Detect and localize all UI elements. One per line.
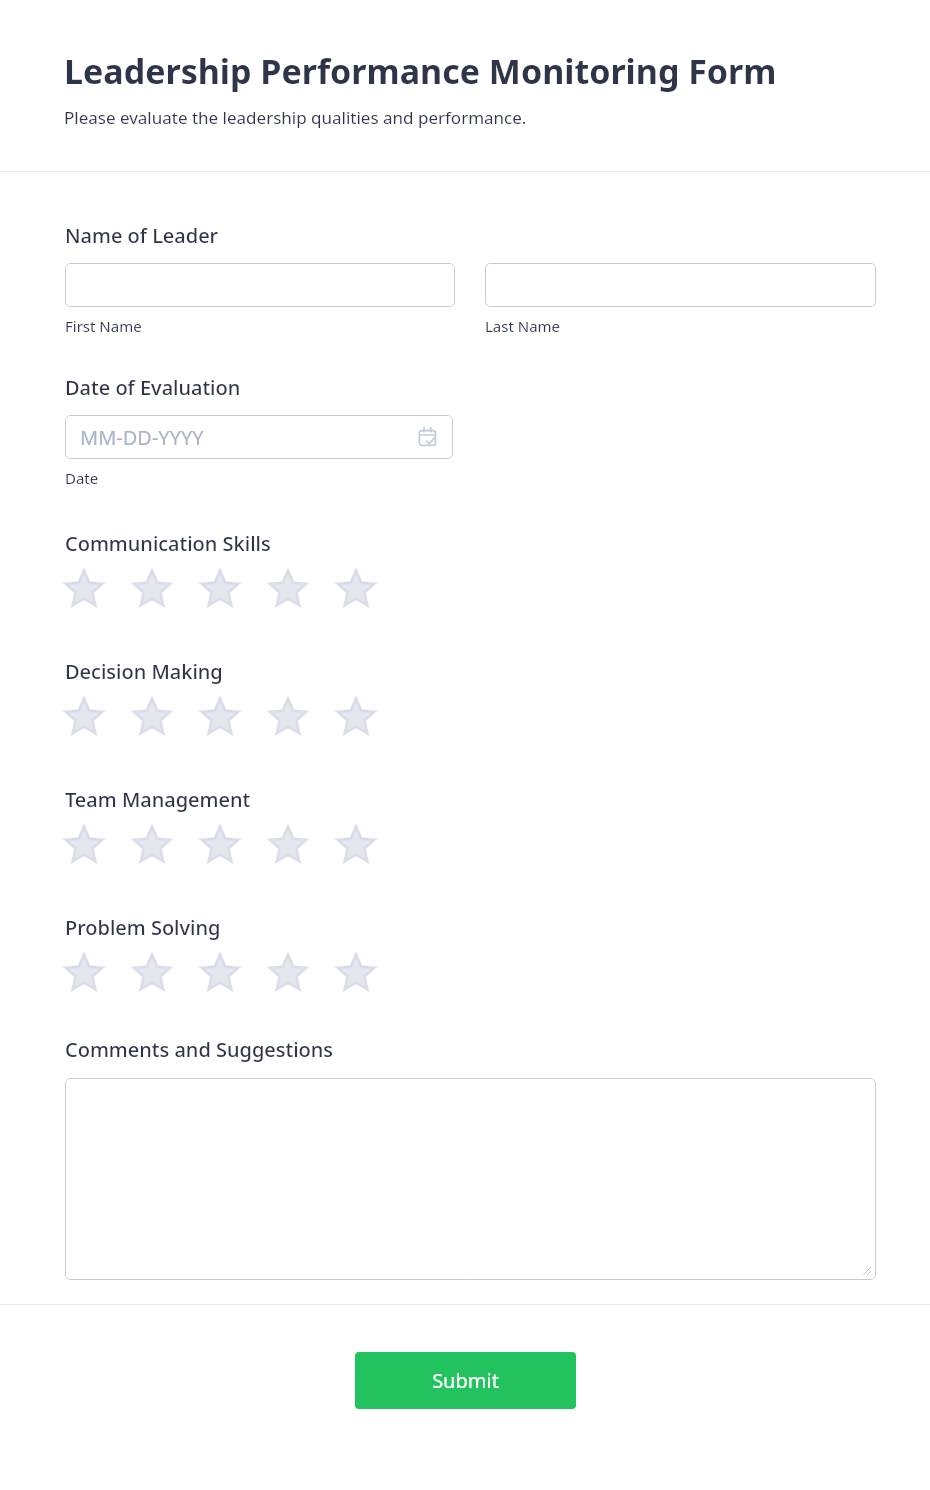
button[interactable] <box>65 263 455 307</box>
staticText: Name of Leader <box>65 222 219 249</box>
button[interactable]: Decision Making rating 4 stars <box>269 697 321 737</box>
staticText: Comments and Suggestions <box>65 1036 334 1063</box>
button[interactable]: Decision Making rating 3 stars <box>201 697 253 737</box>
staticText: Team Management <box>65 786 251 813</box>
staticText: Decision Making <box>65 658 223 685</box>
staticText: Leadership Performance Monitoring Form <box>64 48 777 94</box>
button[interactable]: Communication Skills rating 2 stars <box>133 569 185 609</box>
button[interactable]: Team Management rating 1 stars <box>65 825 117 865</box>
button[interactable]: Decision Making rating 1 stars <box>65 697 117 737</box>
button[interactable]: Team Management rating 5 stars <box>337 825 389 865</box>
button[interactable]: Problem Solving rating 5 stars <box>337 953 389 993</box>
button[interactable]: Communication Skills rating 1 stars <box>65 569 117 609</box>
button[interactable]: Communication Skills rating 4 stars <box>269 569 321 609</box>
button[interactable]: Decision Making rating 5 stars <box>337 697 389 737</box>
button[interactable] <box>485 263 876 307</box>
staticText: Date <box>65 468 99 488</box>
button[interactable]: Problem Solving rating 2 stars <box>133 953 185 993</box>
button[interactable]: Communication Skills rating 5 stars <box>337 569 389 609</box>
button[interactable]: Team Management rating 3 stars <box>201 825 253 865</box>
other: Pick date <box>418 427 438 447</box>
staticText: MM-DD-YYYY <box>80 424 204 451</box>
button[interactable]: Team Management rating 4 stars <box>269 825 321 865</box>
staticText: Problem Solving <box>65 914 221 941</box>
staticText: Communication Skills <box>65 530 271 557</box>
button[interactable]: Decision Making rating 2 stars <box>133 697 185 737</box>
button[interactable] <box>65 1078 876 1280</box>
staticText: Please evaluate the leadership qualities… <box>64 106 527 129</box>
staticText: Date of Evaluation <box>65 374 241 401</box>
button[interactable]: Problem Solving rating 4 stars <box>269 953 321 993</box>
button[interactable]: Problem Solving rating 1 stars <box>65 953 117 993</box>
button[interactable]: MM-DD-YYYY <box>65 415 453 459</box>
staticText: First Name <box>65 316 142 336</box>
button[interactable]: Communication Skills rating 3 stars <box>201 569 253 609</box>
button[interactable]: Team Management rating 2 stars <box>133 825 185 865</box>
staticText: Last Name <box>485 316 561 336</box>
staticText: Submit <box>432 1367 499 1394</box>
button[interactable]: Submit <box>355 1352 576 1409</box>
button[interactable]: Problem Solving rating 3 stars <box>201 953 253 993</box>
